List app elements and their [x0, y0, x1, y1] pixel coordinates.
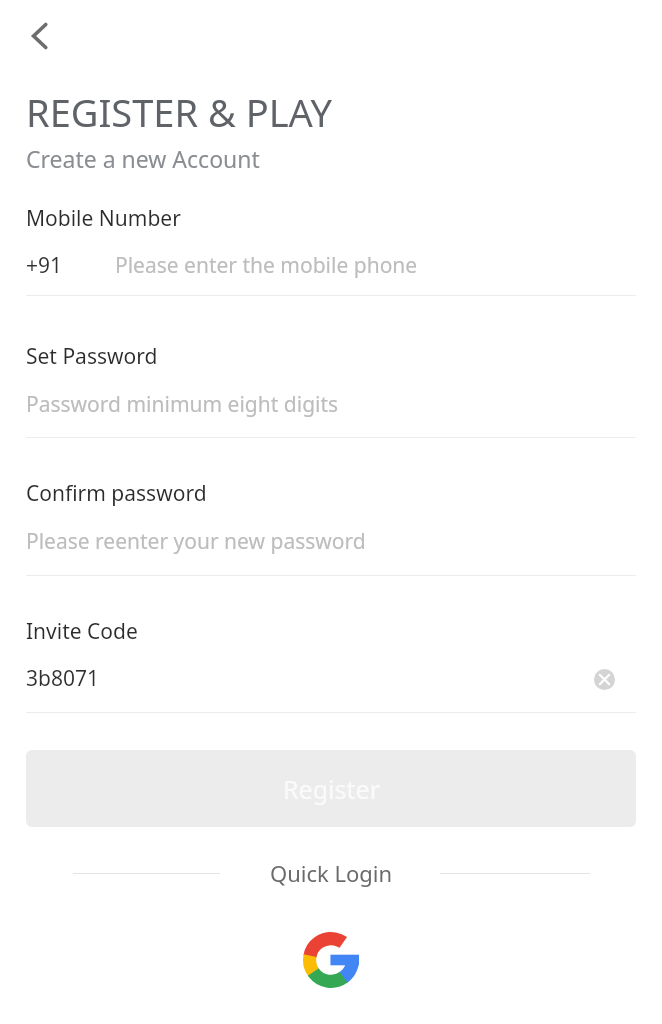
staticText: Quick Login	[270, 858, 393, 888]
staticText: Password minimum eight digits	[26, 390, 339, 419]
staticText: Invite Code	[26, 617, 138, 646]
staticText: Confirm password	[26, 479, 207, 508]
button[interactable]: Sign in with Google	[293, 922, 369, 998]
staticText: Register	[283, 772, 380, 806]
staticText: Please reenter your new password	[26, 527, 366, 556]
staticText: Create a new Account	[26, 143, 260, 174]
button[interactable]: Back	[10, 6, 70, 66]
staticText: Set Password	[26, 342, 158, 371]
button[interactable]: 3b8071	[26, 655, 636, 707]
staticText: Please enter the mobile phone	[115, 251, 418, 280]
staticText: REGISTER & PLAY	[26, 86, 333, 138]
button[interactable]: Clear invite code	[578, 653, 630, 705]
button[interactable]: Please reenter your new password	[26, 519, 636, 569]
staticText: 3b8071	[26, 664, 99, 693]
staticText: Mobile Number	[26, 204, 181, 233]
button[interactable]: +91	[26, 240, 636, 296]
button[interactable]: Password minimum eight digits	[26, 382, 636, 432]
staticText: +91	[26, 251, 63, 280]
